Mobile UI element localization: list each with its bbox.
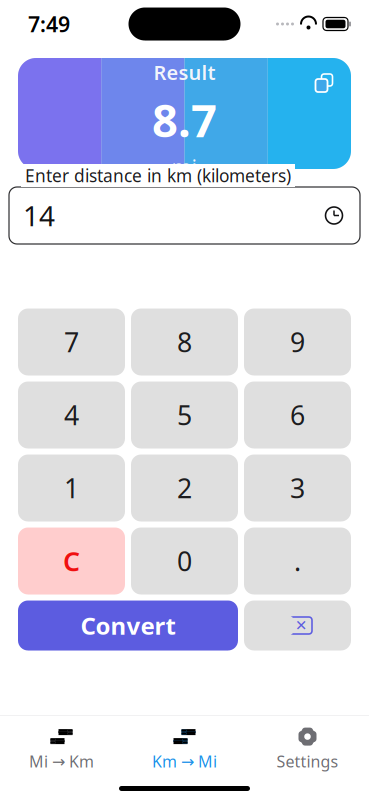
button[interactable]: 4 <box>18 381 125 448</box>
button[interactable]: Km → Mi <box>123 725 246 774</box>
staticText: 4 <box>64 397 79 433</box>
staticText: Mi → Km <box>29 751 94 772</box>
staticText: 6 <box>290 397 305 433</box>
button[interactable]: Convert <box>18 600 238 650</box>
staticText: Convert <box>80 610 175 641</box>
staticText: Settings <box>276 751 338 772</box>
staticText: 5 <box>177 397 192 433</box>
button[interactable]: 3 <box>244 454 351 521</box>
button[interactable]: 1 <box>18 454 125 521</box>
staticText: ✕ <box>295 617 307 634</box>
staticText: mi <box>171 153 197 181</box>
staticText: 0 <box>177 543 192 579</box>
button[interactable]: 7 <box>18 308 125 375</box>
staticText: Result <box>153 59 215 86</box>
staticText: 8.7 <box>152 89 217 150</box>
staticText: 8 <box>177 324 192 360</box>
button[interactable]: . <box>244 527 351 594</box>
button[interactable]: 0 <box>131 527 238 594</box>
staticText: 7:49 <box>28 10 70 38</box>
staticText: 7 <box>64 324 79 360</box>
button[interactable]: Copy result <box>307 66 341 100</box>
button[interactable]: 6 <box>244 381 351 448</box>
staticText: 3 <box>290 470 305 506</box>
button[interactable]: C <box>18 527 125 594</box>
button[interactable]: Delete <box>244 600 351 650</box>
staticText: 1 <box>64 470 79 506</box>
staticText: C <box>63 543 80 579</box>
button[interactable]: Mi → Km <box>0 725 123 774</box>
button[interactable]: 9 <box>244 308 351 375</box>
button[interactable]: History <box>317 198 351 232</box>
staticText: . <box>294 543 301 579</box>
button[interactable]: 8 <box>131 308 238 375</box>
button[interactable]: 2 <box>131 454 238 521</box>
staticText: 2 <box>177 470 192 506</box>
staticText: 9 <box>290 324 305 360</box>
staticText: Enter distance in km (kilometers) <box>25 164 291 187</box>
button[interactable]: Settings <box>246 725 369 774</box>
button[interactable]: 5 <box>131 381 238 448</box>
staticText: Km → Mi <box>152 751 217 772</box>
staticText: 14 <box>23 197 55 234</box>
